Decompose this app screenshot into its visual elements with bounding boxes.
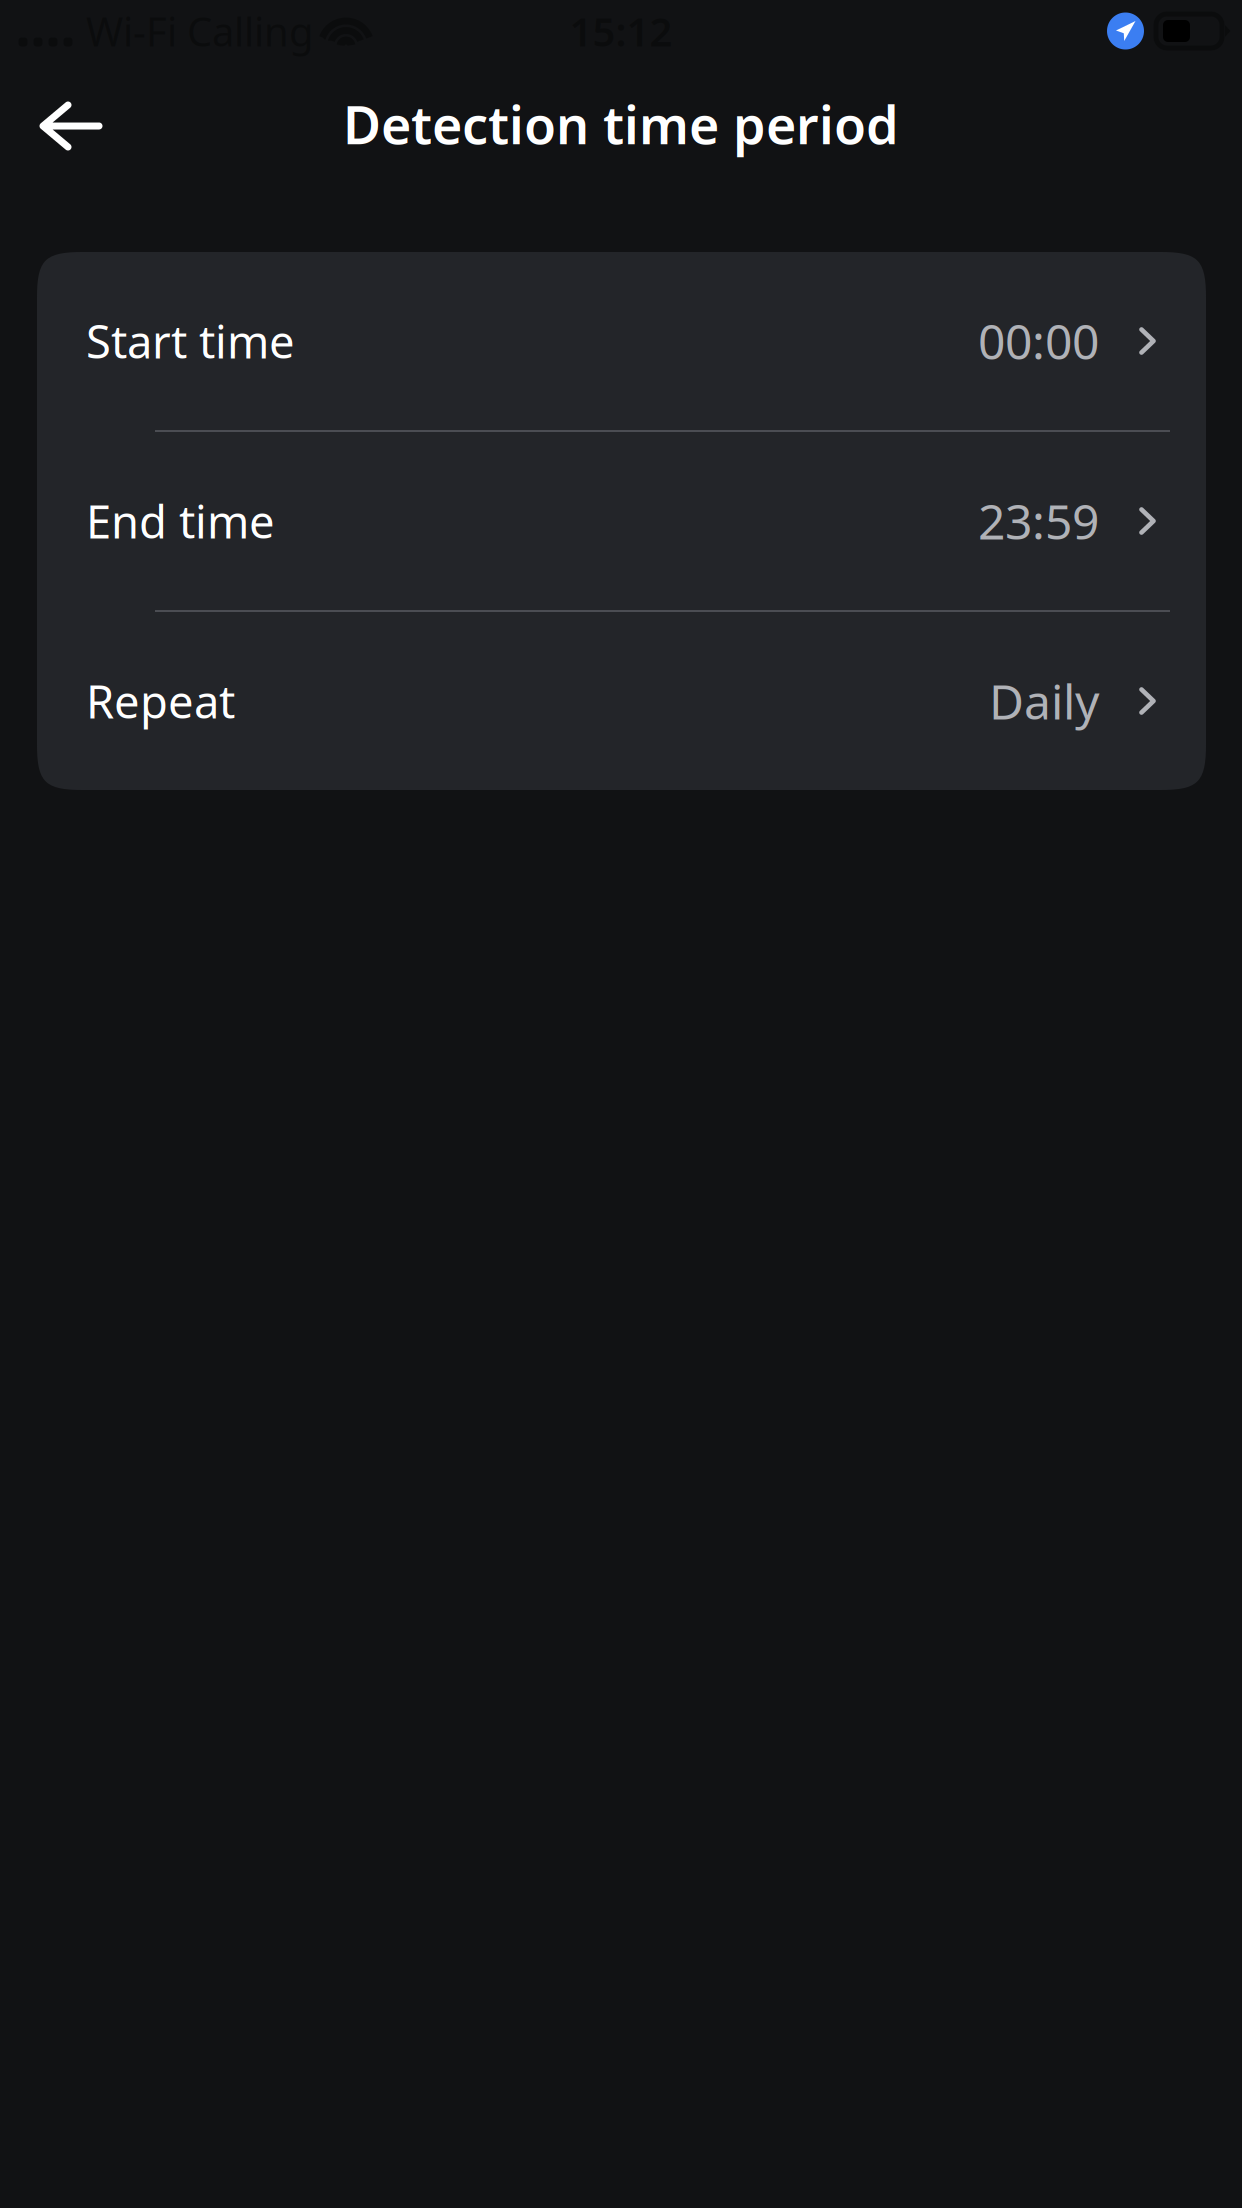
button[interactable]: End time bbox=[37, 432, 1206, 610]
staticText: 23:59 bbox=[978, 489, 1099, 553]
staticText: Start time bbox=[86, 311, 295, 371]
button[interactable]: Back bbox=[0, 62, 136, 180]
staticText: End time bbox=[86, 491, 275, 551]
staticText: Detection time period bbox=[343, 89, 899, 159]
staticText: Repeat bbox=[86, 671, 235, 731]
staticText: 00:00 bbox=[978, 309, 1099, 373]
button[interactable]: Start time bbox=[37, 252, 1206, 430]
button[interactable]: Repeat bbox=[37, 612, 1206, 790]
staticText: Daily bbox=[989, 669, 1099, 733]
